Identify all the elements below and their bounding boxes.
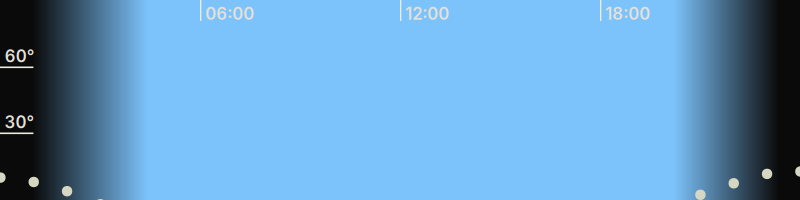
staticText: 18:00: [605, 4, 650, 24]
staticText: 06:00: [205, 4, 254, 24]
staticText: 30°: [4, 112, 34, 132]
staticText: 12:00: [405, 4, 449, 24]
staticText: 60°: [5, 46, 35, 66]
